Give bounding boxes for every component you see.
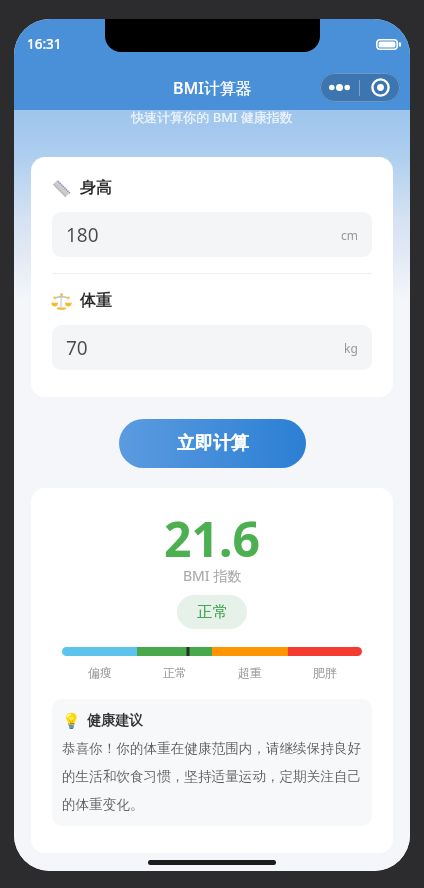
staticText: 70 bbox=[66, 335, 88, 361]
staticText: 身高 bbox=[80, 178, 112, 198]
button[interactable]: 180 bbox=[52, 212, 372, 257]
staticText: 健康建议 bbox=[87, 712, 143, 730]
staticText: 超重 bbox=[238, 665, 262, 680]
staticText: cm bbox=[341, 227, 358, 243]
staticText: 21.6 bbox=[164, 506, 260, 571]
staticText: 立即计算 bbox=[177, 432, 249, 455]
staticText: 💡 bbox=[62, 712, 81, 730]
staticText: kg bbox=[344, 340, 358, 356]
staticText: BMI计算器 bbox=[173, 77, 252, 99]
other: Battery bbox=[376, 39, 402, 50]
staticText: BMI 指数 bbox=[183, 566, 242, 585]
staticText: 正常 bbox=[197, 602, 228, 622]
button[interactable]: 立即计算 bbox=[119, 419, 306, 468]
staticText: 正常 bbox=[163, 665, 187, 680]
button[interactable]: Menu bbox=[320, 73, 400, 102]
staticText: 快速计算你的 BMI 健康指数 bbox=[131, 108, 293, 126]
button[interactable]: 70 bbox=[52, 325, 372, 370]
staticText: 16:31 bbox=[27, 35, 62, 53]
staticText: 恭喜你！你的体重在健康范围内，请继续保持良好的生活和饮食习惯，坚持适量运动，定期… bbox=[62, 740, 362, 813]
staticText: 体重 bbox=[80, 291, 112, 311]
staticText: 肥胖 bbox=[313, 665, 337, 680]
button[interactable]: 正常 bbox=[177, 595, 247, 629]
staticText: 偏瘦 bbox=[88, 665, 112, 680]
staticText: 180 bbox=[66, 222, 99, 248]
